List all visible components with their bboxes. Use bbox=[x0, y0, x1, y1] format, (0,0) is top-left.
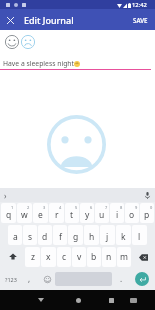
button[interactable]: Switch keyboard bbox=[123, 290, 143, 310]
staticText: v bbox=[77, 251, 82, 263]
staticText: w bbox=[21, 209, 28, 221]
button[interactable]: 3 bbox=[33, 203, 48, 223]
button[interactable]: v bbox=[72, 247, 86, 267]
staticText: 0 bbox=[150, 205, 153, 210]
button[interactable]: Backspace bbox=[132, 247, 154, 267]
button[interactable]: 5 bbox=[65, 203, 79, 223]
staticText: m bbox=[120, 251, 128, 263]
button[interactable]: 2 bbox=[17, 203, 32, 223]
button[interactable]: x bbox=[41, 247, 56, 267]
staticText: d bbox=[42, 231, 48, 243]
staticText: l bbox=[138, 231, 141, 243]
staticText: s bbox=[28, 231, 33, 243]
button[interactable]: Close bbox=[3, 13, 17, 27]
staticText: r bbox=[55, 209, 59, 221]
button[interactable]: Recents bbox=[101, 290, 121, 310]
button[interactable]: 1 bbox=[1, 203, 16, 223]
button[interactable]: s bbox=[23, 225, 37, 245]
button[interactable]: 6 bbox=[80, 203, 94, 223]
button[interactable]: 7 bbox=[95, 203, 109, 223]
staticText: c bbox=[62, 251, 67, 263]
staticText: 12:42 bbox=[132, 1, 147, 9]
button[interactable]: Back bbox=[31, 290, 51, 310]
staticText: , bbox=[28, 273, 31, 284]
staticText: 7 bbox=[105, 205, 108, 210]
staticText: Edit Journal bbox=[24, 14, 74, 26]
button[interactable]: 8 bbox=[110, 203, 124, 223]
staticText: 3 bbox=[43, 205, 46, 210]
button[interactable]: d bbox=[38, 225, 52, 245]
staticText: a bbox=[13, 231, 18, 243]
button[interactable]: l bbox=[132, 225, 147, 245]
button[interactable]: h bbox=[84, 225, 99, 245]
button[interactable]: , bbox=[20, 269, 39, 289]
button[interactable]: Emoji bbox=[39, 269, 55, 289]
button[interactable]: Enter bbox=[130, 269, 154, 289]
button[interactable]: 9 bbox=[125, 203, 139, 223]
button[interactable]: ?123 bbox=[1, 269, 20, 289]
staticText: p bbox=[144, 209, 150, 221]
staticText: t bbox=[70, 209, 74, 221]
button[interactable]: f bbox=[53, 225, 67, 245]
staticText: u bbox=[99, 209, 105, 221]
button[interactable]: SAVE bbox=[133, 9, 148, 30]
button[interactable]: a bbox=[8, 225, 22, 245]
staticText: 2 bbox=[27, 205, 30, 210]
button[interactable]: b bbox=[87, 247, 101, 267]
staticText: k bbox=[121, 231, 126, 243]
other: Voice input bbox=[145, 192, 150, 199]
button[interactable]: . bbox=[112, 269, 130, 289]
staticText: 8 bbox=[120, 205, 123, 210]
button[interactable]: Home bbox=[68, 290, 88, 310]
button[interactable]: z bbox=[25, 247, 40, 267]
staticText: f bbox=[59, 231, 62, 243]
button[interactable]: g bbox=[68, 225, 83, 245]
staticText: g bbox=[73, 231, 79, 243]
staticText: n bbox=[106, 251, 112, 263]
button[interactable]: c bbox=[57, 247, 71, 267]
staticText: b bbox=[91, 251, 97, 263]
staticText: h bbox=[89, 231, 95, 243]
staticText: ?123 bbox=[5, 276, 17, 283]
staticText: SAVE bbox=[133, 16, 148, 24]
button[interactable]: k bbox=[116, 225, 131, 245]
staticText: Have a sleepless night bbox=[3, 59, 74, 68]
staticText: 1 bbox=[11, 205, 14, 210]
staticText: e bbox=[38, 209, 43, 221]
staticText: o bbox=[129, 209, 135, 221]
button[interactable]: n bbox=[102, 247, 116, 267]
button[interactable]: Sad mood bbox=[21, 35, 35, 49]
staticText: 5 bbox=[75, 205, 78, 210]
button[interactable]: Happy mood bbox=[5, 35, 19, 49]
staticText: j bbox=[106, 231, 109, 243]
staticText: i bbox=[116, 209, 119, 221]
button[interactable]: j bbox=[100, 225, 115, 245]
staticText: 6 bbox=[90, 205, 93, 210]
staticText: 4 bbox=[59, 205, 62, 210]
staticText: q bbox=[6, 209, 12, 221]
button[interactable]: 0 bbox=[140, 203, 154, 223]
staticText: . bbox=[120, 273, 123, 284]
button[interactable]: Shift bbox=[1, 247, 24, 267]
staticText: z bbox=[31, 251, 35, 263]
button[interactable]: m bbox=[117, 247, 131, 267]
staticText: y bbox=[85, 209, 90, 221]
staticText: 9 bbox=[135, 205, 138, 210]
staticText: x bbox=[46, 251, 51, 263]
button[interactable]: 4 bbox=[49, 203, 64, 223]
staticText: › bbox=[4, 190, 7, 201]
